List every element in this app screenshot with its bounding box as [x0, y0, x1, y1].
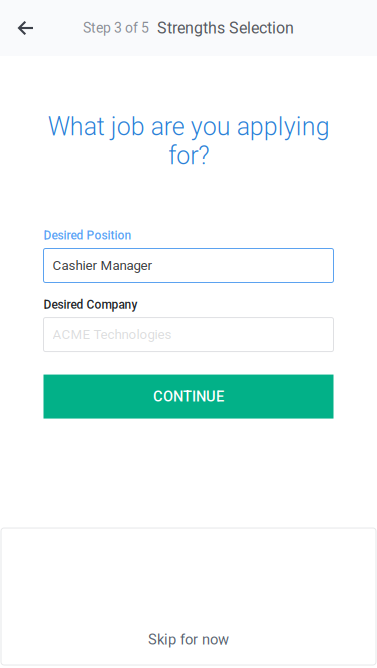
staticText: ACME Technologies [52, 327, 171, 342]
button[interactable]: Skip for now [1, 528, 376, 665]
staticText: Skip for now [148, 631, 229, 648]
button[interactable]: Back [0, 0, 56, 56]
button[interactable]: CONTINUE [43, 375, 333, 419]
staticText: Desired Position [43, 228, 131, 242]
staticText: What job are you applying for? [47, 112, 329, 170]
staticText: CONTINUE [153, 388, 224, 405]
staticText: Step 3 of 5 [83, 20, 149, 36]
staticText: Cashier Manager [52, 258, 152, 273]
staticText: Strengths Selection [157, 19, 294, 37]
staticText: Desired Company [43, 297, 137, 312]
